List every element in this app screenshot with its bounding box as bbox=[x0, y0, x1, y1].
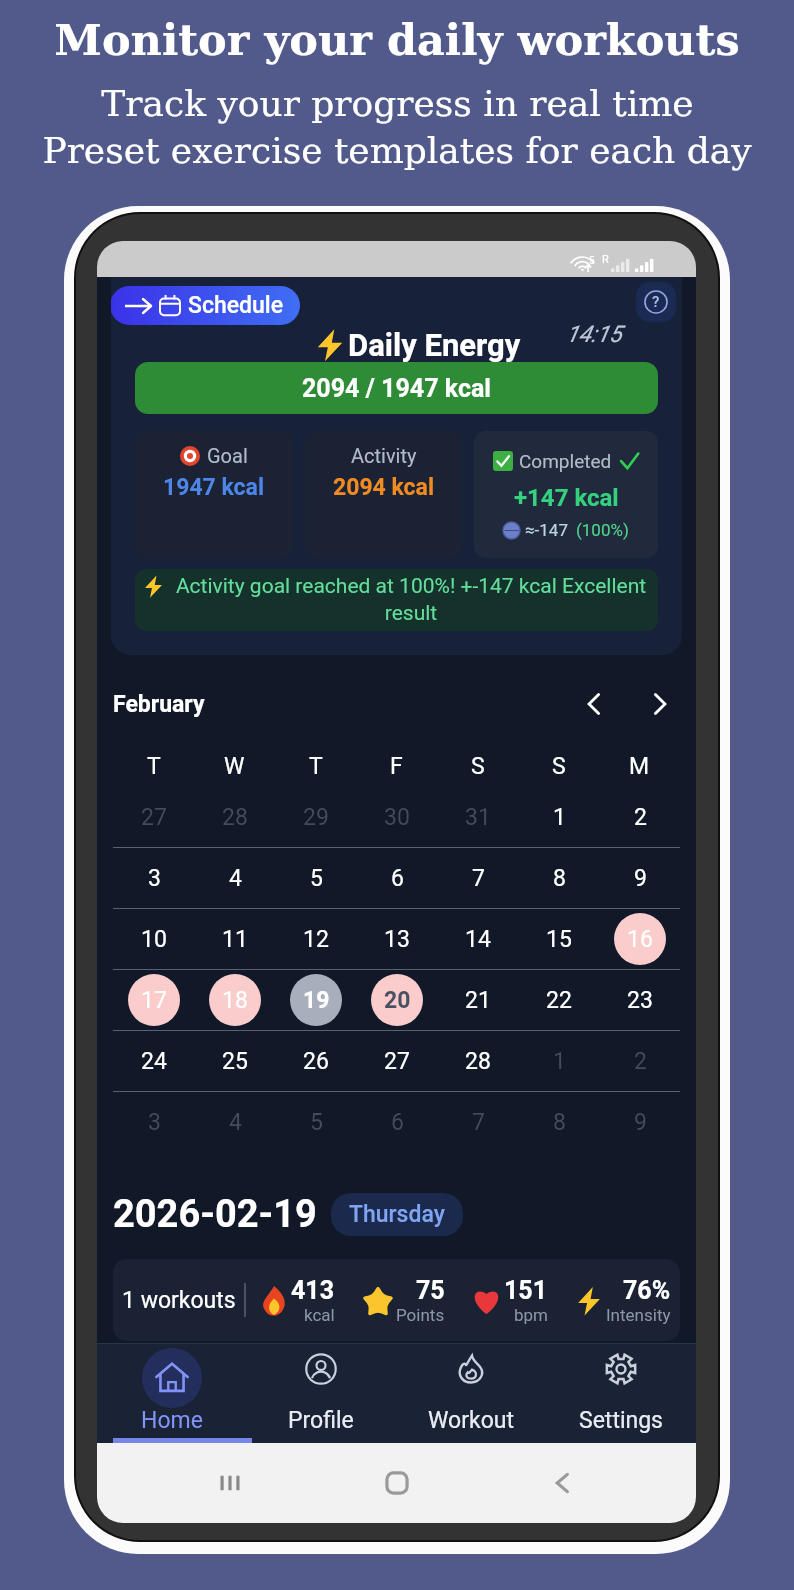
staticText: 7 bbox=[472, 1109, 485, 1136]
button[interactable]: 11 bbox=[209, 913, 261, 965]
button[interactable]: Thursday bbox=[331, 1193, 463, 1236]
button[interactable]: Workout bbox=[396, 1343, 546, 1443]
button[interactable]: 15 bbox=[533, 913, 585, 965]
button[interactable]: Help bbox=[636, 282, 676, 322]
staticText: 6 bbox=[391, 1109, 404, 1136]
staticText: Daily Energy bbox=[348, 327, 521, 363]
staticText: Thursday bbox=[349, 1201, 445, 1228]
staticText: 14:15 bbox=[566, 321, 622, 348]
staticText: 151 bbox=[504, 1276, 548, 1305]
button[interactable]: 6 bbox=[371, 852, 423, 904]
button[interactable]: Next month bbox=[638, 683, 680, 725]
button[interactable]: 5 bbox=[290, 852, 342, 904]
staticText: Profile bbox=[288, 1407, 354, 1434]
button[interactable]: 8 bbox=[533, 1096, 585, 1148]
button[interactable]: 29 bbox=[290, 791, 342, 843]
button[interactable]: 3 bbox=[128, 852, 180, 904]
button[interactable]: 22 bbox=[533, 974, 585, 1026]
button[interactable]: 10 bbox=[128, 913, 180, 965]
other: Back bbox=[545, 1465, 581, 1501]
button[interactable]: Settings bbox=[546, 1343, 696, 1443]
staticText: 1 bbox=[553, 804, 566, 831]
staticText: 1 bbox=[553, 1048, 566, 1075]
button[interactable]: 7 bbox=[452, 1096, 504, 1148]
button[interactable]: 12 bbox=[290, 913, 342, 965]
staticText: 2094 kcal bbox=[333, 474, 435, 501]
staticText: 4 bbox=[229, 1109, 242, 1136]
button[interactable]: 23 bbox=[614, 974, 666, 1026]
button[interactable]: Profile bbox=[246, 1343, 396, 1443]
button[interactable]: 7 bbox=[452, 852, 504, 904]
staticText: 75 bbox=[416, 1276, 445, 1305]
button[interactable]: 27 bbox=[128, 791, 180, 843]
staticText: M bbox=[629, 753, 650, 780]
button[interactable]: 31 bbox=[452, 791, 504, 843]
button[interactable]: 1 bbox=[533, 791, 585, 843]
staticText: 14 bbox=[465, 926, 491, 953]
staticText: 10 bbox=[141, 926, 167, 953]
button[interactable]: 5 bbox=[290, 1096, 342, 1148]
staticText: Activity bbox=[351, 444, 417, 467]
staticText: 27 bbox=[384, 1048, 410, 1075]
button[interactable]: Schedule bbox=[111, 286, 300, 325]
button[interactable]: Completed bbox=[474, 431, 658, 558]
button[interactable]: 21 bbox=[452, 974, 504, 1026]
staticText: 1 workouts bbox=[122, 1287, 236, 1314]
staticText: 5 bbox=[589, 255, 595, 267]
staticText: 5 bbox=[310, 1109, 323, 1136]
button[interactable]: 8 bbox=[533, 852, 585, 904]
button[interactable]: 30 bbox=[371, 791, 423, 843]
button[interactable]: 24 bbox=[128, 1035, 180, 1087]
staticText: Track your progress in real time bbox=[101, 83, 694, 125]
button[interactable]: 9 bbox=[614, 1096, 666, 1148]
button[interactable]: 6 bbox=[371, 1096, 423, 1148]
button[interactable]: 19 bbox=[290, 974, 342, 1026]
button[interactable]: 17 bbox=[128, 974, 180, 1026]
button[interactable]: 4 bbox=[209, 852, 261, 904]
staticText: 19 bbox=[303, 987, 330, 1014]
button[interactable]: 9 bbox=[614, 852, 666, 904]
button[interactable]: 4 bbox=[209, 1096, 261, 1148]
staticText: 12 bbox=[303, 926, 329, 953]
button[interactable]: 3 bbox=[128, 1096, 180, 1148]
button[interactable]: 2094 / 1947 kcal bbox=[135, 362, 658, 414]
staticText: 28 bbox=[222, 804, 248, 831]
staticText: Preset exercise templates for each day bbox=[42, 130, 752, 172]
staticText: 2 bbox=[634, 1048, 647, 1075]
staticText: F bbox=[390, 753, 403, 780]
staticText: 29 bbox=[303, 804, 329, 831]
other: Recents bbox=[212, 1465, 248, 1501]
staticText: S bbox=[552, 753, 566, 780]
staticText: +147 kcal bbox=[514, 484, 619, 512]
staticText: Points bbox=[396, 1305, 445, 1325]
staticText: 21 bbox=[465, 987, 491, 1014]
staticText: 16 bbox=[627, 926, 653, 953]
button[interactable]: Previous month bbox=[574, 683, 616, 725]
button[interactable]: 18 bbox=[209, 974, 261, 1026]
staticText: Settings bbox=[579, 1407, 663, 1434]
button[interactable]: 2 bbox=[614, 791, 666, 843]
button[interactable]: 25 bbox=[209, 1035, 261, 1087]
button[interactable]: 20 bbox=[371, 974, 423, 1026]
staticText: Goal bbox=[207, 444, 248, 467]
button[interactable]: 2 bbox=[614, 1035, 666, 1087]
button[interactable]: 14 bbox=[452, 913, 504, 965]
button[interactable]: 13 bbox=[371, 913, 423, 965]
staticText: 2 bbox=[634, 804, 647, 831]
staticText: 11 bbox=[222, 926, 248, 953]
button[interactable]: 27 bbox=[371, 1035, 423, 1087]
button[interactable]: Home bbox=[97, 1343, 246, 1443]
button[interactable]: 16 bbox=[614, 913, 666, 965]
staticText: 1947 kcal bbox=[163, 474, 265, 501]
button[interactable]: 26 bbox=[290, 1035, 342, 1087]
staticText: W bbox=[224, 753, 245, 780]
button[interactable]: Goal bbox=[135, 431, 293, 558]
button[interactable]: Activity bbox=[305, 431, 462, 558]
staticText: kcal bbox=[304, 1305, 335, 1325]
button[interactable]: 28 bbox=[209, 791, 261, 843]
button[interactable]: 1 bbox=[533, 1035, 585, 1087]
button[interactable]: 28 bbox=[452, 1035, 504, 1087]
staticText: 23 bbox=[627, 987, 653, 1014]
staticText: 76% bbox=[623, 1276, 671, 1305]
staticText: 13 bbox=[384, 926, 410, 953]
